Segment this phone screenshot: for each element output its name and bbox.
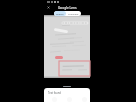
button[interactable]: Translate [66, 11, 81, 16]
staticText: Search [56, 12, 64, 15]
staticText: Translate [68, 12, 79, 15]
staticText: Google Lens [58, 6, 77, 10]
button[interactable]: Search [54, 11, 66, 16]
button[interactable]: Close [46, 5, 51, 10]
staticText: Text found [48, 91, 61, 95]
